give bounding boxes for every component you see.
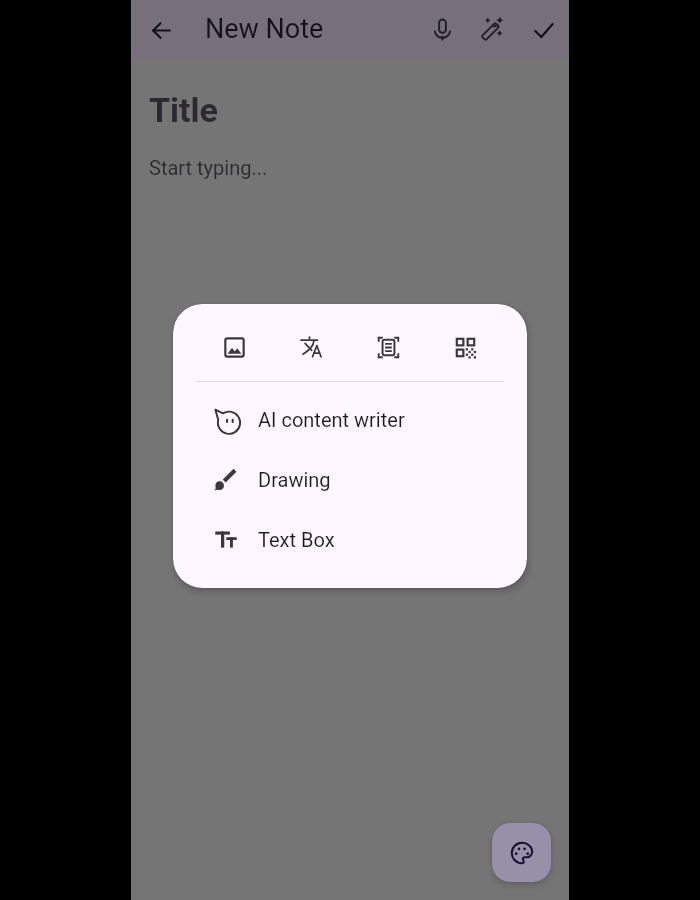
button[interactable]: Insert image <box>196 313 273 381</box>
button[interactable]: Voice input <box>418 6 466 54</box>
button[interactable]: AI assist <box>469 6 517 54</box>
button[interactable]: Text Box <box>173 511 527 571</box>
button[interactable]: Scan document <box>350 313 427 381</box>
staticText: AI content writer <box>258 408 405 431</box>
staticText: Text Box <box>258 528 335 551</box>
staticText: New Note <box>205 13 324 45</box>
button[interactable]: AI content writer <box>173 391 527 451</box>
button[interactable]: Scan QR code <box>427 313 504 381</box>
staticText: Title <box>149 90 218 130</box>
button[interactable]: Save <box>520 6 568 54</box>
staticText: Drawing <box>258 468 331 491</box>
button[interactable]: Translate <box>273 313 350 381</box>
button[interactable]: Palette <box>492 823 551 882</box>
staticText: Start typing... <box>149 156 268 179</box>
button[interactable]: Drawing <box>173 451 527 511</box>
button[interactable]: Back <box>137 6 185 54</box>
